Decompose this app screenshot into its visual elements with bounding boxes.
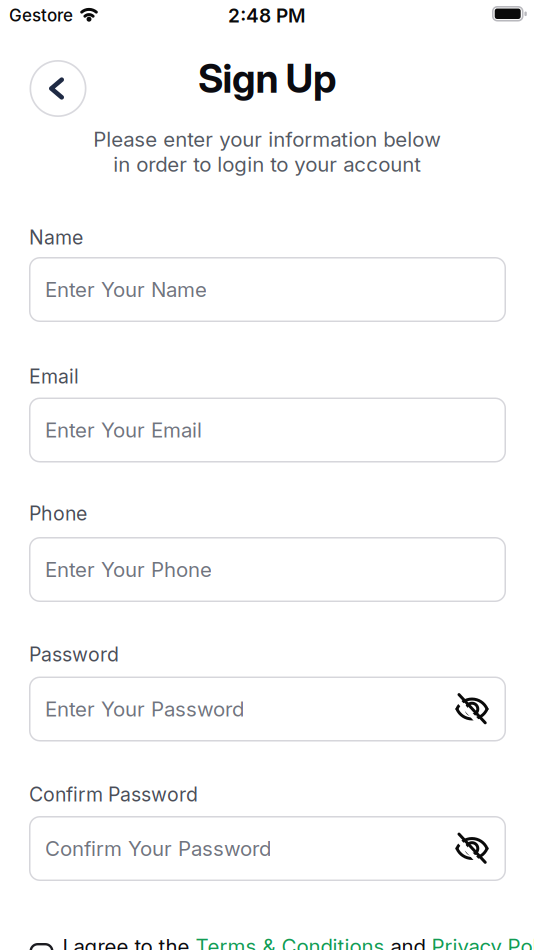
- button[interactable]: Agree to terms: [29, 943, 53, 950]
- staticText: Privacy Policy: [431, 934, 534, 950]
- staticText: Name: [29, 225, 83, 249]
- staticText: 2:48 PM: [228, 4, 306, 27]
- button[interactable]: Back: [29, 60, 86, 117]
- staticText: Enter Your Phone: [45, 557, 212, 582]
- staticText: Gestore: [9, 5, 73, 26]
- staticText: and: [384, 934, 431, 950]
- staticText: Terms & Conditions: [195, 934, 384, 950]
- staticText: Phone: [29, 501, 87, 525]
- staticText: Confirm Your Password: [45, 836, 271, 861]
- staticText: I agree to the: [62, 934, 195, 950]
- staticText: Enter Your Name: [45, 277, 207, 302]
- button[interactable]: Enter Your Password: [29, 676, 506, 741]
- button[interactable]: Enter Your Email: [29, 397, 506, 462]
- staticText: Confirm Password: [29, 782, 198, 806]
- staticText: Sign Up: [198, 55, 336, 102]
- staticText: Email: [29, 364, 79, 388]
- button[interactable]: Enter Your Name: [29, 257, 506, 322]
- button[interactable]: Enter Your Phone: [29, 537, 506, 602]
- button[interactable]: I agree to the: [62, 934, 534, 950]
- staticText: Please enter your information below in o…: [93, 127, 441, 177]
- staticText: Enter Your Password: [45, 697, 244, 721]
- staticText: Enter Your Email: [45, 418, 202, 442]
- staticText: Password: [29, 642, 119, 666]
- button[interactable]: Confirm Your Password: [29, 816, 506, 881]
